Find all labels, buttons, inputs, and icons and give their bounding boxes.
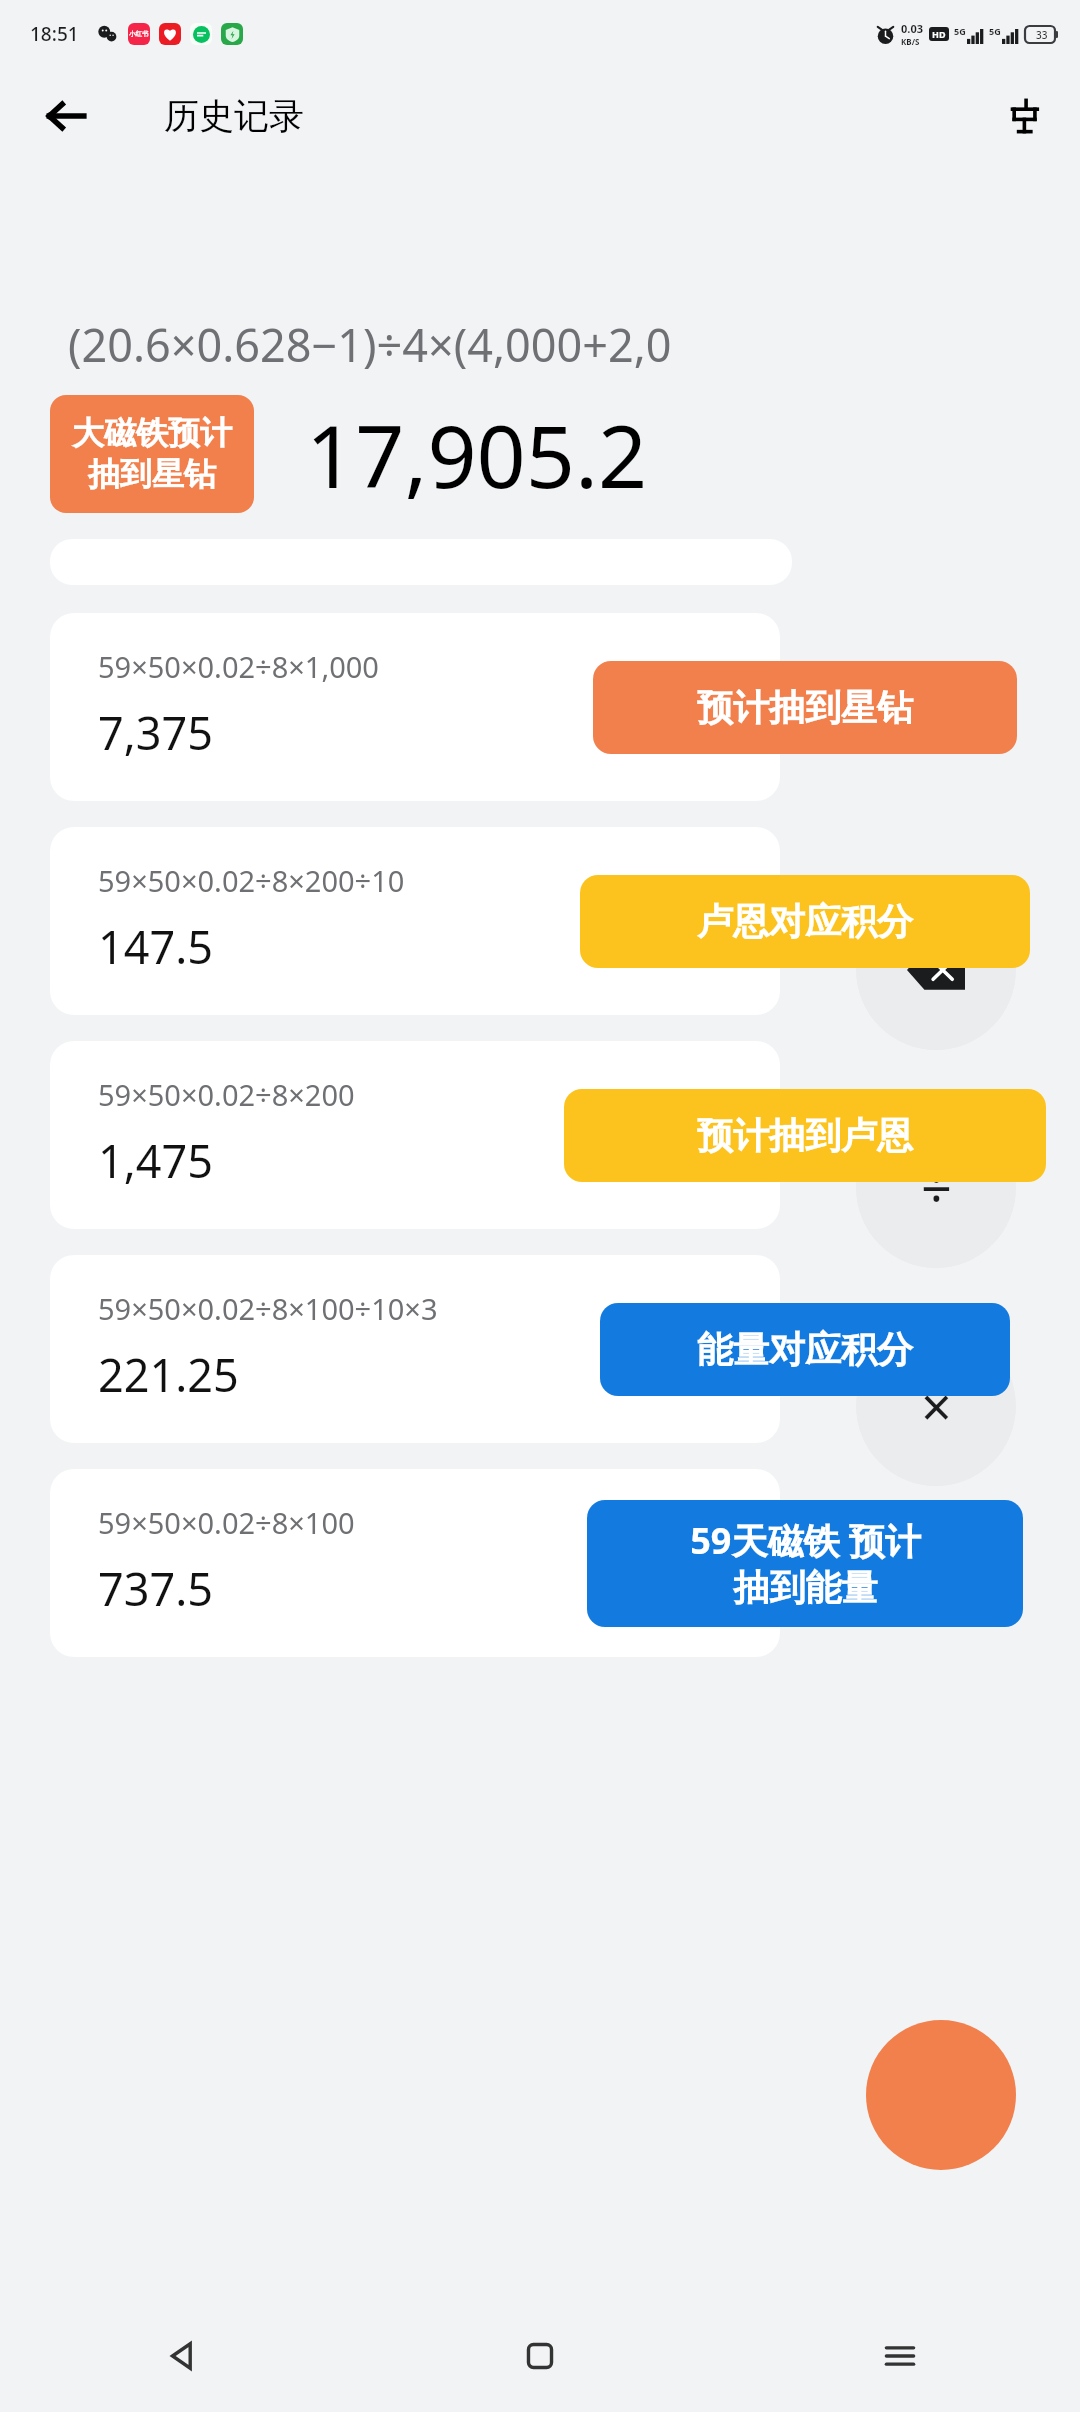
button[interactable]: 59天磁铁 预计 抽到能量: [587, 1500, 1023, 1627]
button[interactable]: Backspace: [856, 890, 1016, 1050]
button[interactable]: Equals: [866, 2020, 1016, 2170]
staticText: 59×50×0.02÷8×1,000: [98, 647, 379, 686]
staticText: 5G: [989, 25, 1001, 37]
button[interactable]: 卢恩对应积分: [580, 875, 1030, 968]
button[interactable]: Back: [0, 2300, 360, 2412]
button[interactable]: Clear history: [994, 88, 1050, 144]
staticText: ×: [921, 1369, 952, 1443]
button[interactable]: 59×50×0.02÷8×200: [50, 1041, 780, 1229]
staticText: 17,905.2: [306, 396, 648, 513]
staticText: 大磁铁预计 抽到星钻: [72, 413, 232, 495]
staticText: ÷: [921, 1151, 952, 1225]
staticText: 1,475: [98, 1130, 214, 1191]
staticText: 7,375: [98, 702, 214, 763]
staticText: 59×50×0.02÷8×100÷10×3: [98, 1289, 438, 1328]
button[interactable]: Multiply: [856, 1326, 1016, 1486]
staticText: 历史记录: [164, 94, 304, 138]
staticText: 18:51: [30, 21, 79, 47]
button[interactable]: 59×50×0.02÷8×100÷10×3: [50, 1255, 780, 1443]
staticText: 预计抽到卢恩: [697, 1113, 913, 1158]
staticText: 33: [1036, 28, 1048, 42]
button[interactable]: Divide: [856, 1108, 1016, 1268]
button[interactable]: Home: [360, 2300, 720, 2412]
button[interactable]: 59×50×0.02÷8×100: [50, 1469, 780, 1657]
staticText: 59×50×0.02÷8×100: [98, 1503, 355, 1542]
button[interactable]: 大磁铁预计 抽到星钻: [50, 395, 254, 513]
button[interactable]: 59×50×0.02÷8×200÷10: [50, 827, 780, 1015]
staticText: 能量对应积分: [697, 1327, 913, 1372]
button[interactable]: Recent apps: [720, 2300, 1080, 2412]
button[interactable]: 能量对应积分: [600, 1303, 1010, 1396]
button[interactable]: 预计抽到星钻: [593, 661, 1017, 754]
staticText: 预计抽到星钻: [697, 685, 913, 730]
staticText: 0.03: [901, 21, 923, 36]
staticText: 小红书: [129, 30, 149, 38]
staticText: 59×50×0.02÷8×200÷10: [98, 861, 405, 900]
staticText: 59×50×0.02÷8×200: [98, 1075, 355, 1114]
button[interactable]: 预计抽到卢恩: [564, 1089, 1046, 1182]
staticText: KB/S: [901, 36, 920, 47]
staticText: HD: [932, 28, 946, 40]
staticText: 147.5: [98, 916, 214, 977]
staticText: 737.5: [98, 1558, 214, 1619]
staticText: 5G: [954, 25, 966, 37]
button[interactable]: 59×50×0.02÷8×1,000: [50, 613, 780, 801]
staticText: (20.6×0.628−1)÷4×(4,000+2,0: [68, 314, 672, 375]
button[interactable]: Back: [38, 88, 94, 144]
staticText: 卢恩对应积分: [697, 899, 913, 944]
staticText: 59天磁铁 预计 抽到能量: [690, 1516, 921, 1611]
staticText: 221.25: [98, 1344, 239, 1405]
